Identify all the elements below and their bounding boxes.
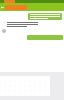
button[interactable]: Back bbox=[0, 5, 5, 10]
button[interactable] bbox=[27, 35, 63, 40]
button[interactable] bbox=[30, 14, 60, 19]
